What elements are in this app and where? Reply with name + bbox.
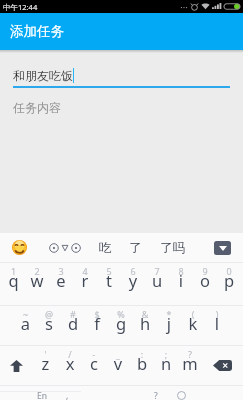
button[interactable]: 6 xyxy=(121,263,145,305)
button[interactable]: Symbols xyxy=(0,386,28,400)
staticText: 5 xyxy=(97,265,121,277)
staticText: 中午12:44 xyxy=(3,2,38,12)
staticText: l xyxy=(205,312,229,334)
staticText: En xyxy=(37,390,47,400)
staticText: ? xyxy=(178,348,202,360)
button[interactable]: : xyxy=(130,346,154,385)
staticText: j xyxy=(157,312,181,334)
staticText: ; xyxy=(154,348,178,360)
button[interactable]: 5 xyxy=(97,263,121,305)
button[interactable]: , xyxy=(55,386,80,400)
button[interactable]: @ xyxy=(37,306,61,345)
staticText: h xyxy=(133,312,157,334)
staticText: % xyxy=(109,308,133,320)
staticText: u xyxy=(145,269,169,291)
button[interactable]: ? xyxy=(178,346,202,385)
button[interactable]: Shift xyxy=(0,346,33,385)
staticText: x xyxy=(58,352,82,374)
staticText: / xyxy=(58,348,82,360)
staticText: 和朋友吃饭 xyxy=(13,68,73,83)
staticText: 3 xyxy=(49,265,73,277)
staticText: i xyxy=(169,269,193,291)
button[interactable]: Emoji keyboard xyxy=(168,386,194,400)
button[interactable]: $ xyxy=(85,306,109,345)
button[interactable]: 和朋友吃饭 xyxy=(13,65,230,86)
button[interactable]: ' xyxy=(33,346,58,385)
button[interactable]: Emoji xyxy=(0,233,39,262)
staticText: m xyxy=(178,352,202,374)
button[interactable]: En xyxy=(28,386,55,400)
button[interactable]: % xyxy=(109,306,133,345)
staticText: , xyxy=(66,390,69,400)
staticText: s xyxy=(37,312,61,334)
staticText: - xyxy=(82,348,106,360)
button[interactable]: ; xyxy=(154,346,178,385)
staticText: o xyxy=(193,269,217,291)
staticText: g xyxy=(109,312,133,334)
staticText: t xyxy=(97,269,121,291)
button[interactable]: 1 xyxy=(2,263,25,305)
staticText: a xyxy=(14,312,37,334)
staticText: 添加任务 xyxy=(10,23,64,40)
staticText: 6 xyxy=(121,265,145,277)
staticText: w xyxy=(25,269,49,291)
staticText: 4 xyxy=(73,265,97,277)
button[interactable]: Kaomoji xyxy=(39,233,90,262)
staticText: c xyxy=(82,352,106,374)
staticText: v xyxy=(106,352,130,374)
staticText: f xyxy=(85,312,109,334)
staticText: 9 xyxy=(193,265,217,277)
button[interactable]: ? xyxy=(143,386,168,400)
staticText: 任务内容 xyxy=(13,100,61,115)
button[interactable]: ~ xyxy=(14,306,37,345)
button[interactable]: 吃 xyxy=(90,233,120,262)
staticText: ~ xyxy=(14,308,37,320)
button[interactable]: Backspace xyxy=(202,346,243,385)
staticText: 了吗 xyxy=(160,240,185,256)
staticText: p xyxy=(217,269,241,291)
staticText: d xyxy=(61,312,85,334)
button[interactable]: # xyxy=(61,306,85,345)
staticText: q xyxy=(2,269,25,291)
button[interactable]: More candidates xyxy=(214,241,231,255)
staticText: r xyxy=(73,269,97,291)
button[interactable]: 9 xyxy=(193,263,217,305)
button[interactable]: 任务内容 xyxy=(13,98,230,116)
staticText: 2 xyxy=(25,265,49,277)
staticText: 吃 xyxy=(99,240,112,256)
staticText: 1 xyxy=(2,265,25,277)
staticText: * xyxy=(157,308,181,320)
button[interactable]: 7 xyxy=(145,263,169,305)
button[interactable]: - xyxy=(82,346,106,385)
button[interactable]: 了吗 xyxy=(150,233,194,262)
button[interactable]: 3 xyxy=(49,263,73,305)
staticText: & xyxy=(133,308,157,320)
button[interactable]: 了 xyxy=(120,233,150,262)
staticText: e xyxy=(49,269,73,291)
button[interactable]: 8 xyxy=(169,263,193,305)
staticText: 8 xyxy=(169,265,193,277)
staticText: b xyxy=(130,352,154,374)
staticText: 0 xyxy=(217,265,241,277)
staticText: ' xyxy=(33,348,58,360)
staticText: 7 xyxy=(145,265,169,277)
staticText: ( xyxy=(181,308,205,320)
staticText: : xyxy=(130,348,154,360)
staticText: k xyxy=(181,312,205,334)
staticText: ? xyxy=(154,390,158,400)
button[interactable]: / xyxy=(58,346,82,385)
button[interactable]: 0 xyxy=(217,263,241,305)
button[interactable]: ) xyxy=(205,306,229,345)
button[interactable]: 2 xyxy=(25,263,49,305)
staticText: ) xyxy=(205,308,229,320)
staticText: 了 xyxy=(129,240,142,256)
button[interactable]: ( xyxy=(181,306,205,345)
staticText: y xyxy=(121,269,145,291)
button[interactable]: 4 xyxy=(73,263,97,305)
button[interactable]: * xyxy=(157,306,181,345)
button[interactable]: & xyxy=(133,306,157,345)
button[interactable]: _ xyxy=(106,346,130,385)
staticText: # xyxy=(61,308,85,320)
